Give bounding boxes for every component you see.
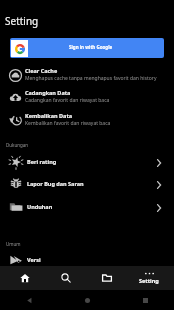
staticText: Setting — [139, 277, 159, 284]
button[interactable]: Search — [43, 266, 86, 290]
staticText: Lapor Bug dan Saran — [27, 180, 166, 187]
staticText: Clear Cache — [25, 67, 58, 74]
staticText: Kembalikan favorit dan riwayat baca — [25, 120, 111, 127]
button[interactable]: Clear Cache — [0, 63, 174, 85]
button[interactable]: Home — [0, 266, 43, 290]
staticText: Beri rating — [27, 158, 166, 165]
staticText: Unduhan — [27, 203, 166, 210]
other: Back — [26, 297, 33, 304]
button[interactable]: Kembalikan Data — [0, 108, 174, 130]
staticText: Dukungan — [6, 142, 29, 148]
staticText: Cadangkan Data — [25, 89, 71, 96]
button[interactable]: Versi — [0, 248, 174, 270]
staticText: Menghapus cache tanpa menghapus favorit … — [25, 75, 157, 82]
button[interactable]: Sign in with Google — [10, 38, 164, 58]
button[interactable]: Beri rating — [0, 150, 174, 172]
staticText: Setting — [5, 14, 39, 28]
staticText: Umum — [6, 241, 21, 247]
button[interactable]: Cadangkan Data — [0, 85, 174, 107]
button[interactable]: Lapor Bug dan Saran — [0, 172, 174, 194]
button[interactable]: Setting — [130, 273, 174, 284]
button[interactable]: Unduhan — [0, 195, 174, 217]
staticText: Versi — [27, 256, 174, 263]
button[interactable]: Library — [86, 266, 130, 290]
other: Home — [84, 297, 91, 304]
staticText: Kembalikan Data — [25, 112, 73, 119]
staticText: Sign in with Google — [69, 44, 113, 50]
staticText: Cadangkan favorit dan riwayat baca — [25, 97, 110, 104]
